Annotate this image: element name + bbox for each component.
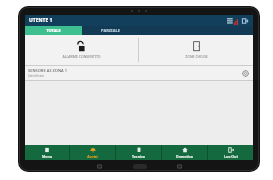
staticText: ZONE CHIUSE bbox=[185, 54, 208, 59]
button[interactable]: Log Out bbox=[208, 145, 253, 160]
staticText: Tecnico bbox=[132, 154, 145, 158]
button[interactable]: TOTALE bbox=[25, 26, 82, 35]
button[interactable]: Esci bbox=[241, 17, 249, 25]
button[interactable]: PARZIALE bbox=[82, 26, 139, 35]
button[interactable]: SENSORE A3 ZONA 1 bbox=[25, 66, 253, 80]
staticText: PARZIALE bbox=[101, 28, 120, 33]
button[interactable]: Tecnico bbox=[116, 145, 161, 160]
staticText: Menu bbox=[42, 154, 52, 158]
other: Back bbox=[97, 164, 102, 169]
button[interactable]: Impostazioni sensore bbox=[241, 69, 250, 78]
button[interactable]: ZONE CHIUSE bbox=[139, 35, 253, 65]
button[interactable]: Stato connessione bbox=[226, 17, 239, 25]
staticText: Avvisi bbox=[87, 154, 98, 158]
button[interactable]: Avvisi bbox=[70, 145, 115, 160]
staticText: TOTALE bbox=[46, 28, 61, 33]
staticText: UTENTE 1 bbox=[29, 17, 53, 24]
staticText: SENSORE A3 ZONA 1 bbox=[28, 68, 68, 73]
staticText: ALLARME CONSENTITO bbox=[62, 54, 101, 59]
button[interactable]: Home bbox=[133, 164, 147, 169]
staticText: Log Out bbox=[224, 154, 238, 158]
button[interactable]: Domotica bbox=[162, 145, 207, 160]
staticText: Domotica bbox=[176, 154, 193, 158]
staticText: Identificato bbox=[28, 74, 45, 78]
button[interactable]: ALLARME CONSENTITO bbox=[25, 35, 138, 65]
button[interactable]: Menu bbox=[25, 145, 69, 160]
other: Recents bbox=[177, 164, 182, 169]
